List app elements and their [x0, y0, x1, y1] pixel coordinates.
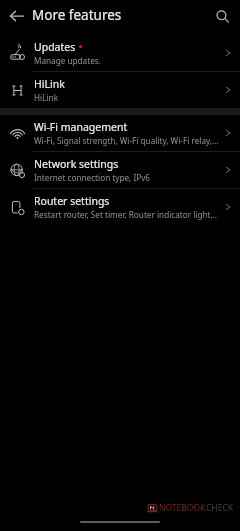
staticText: Manage updates.: [34, 55, 101, 66]
staticText: Router settings: [34, 194, 110, 208]
staticText: Wi-Fi management: [34, 120, 128, 134]
button[interactable]: Back: [4, 3, 30, 29]
button[interactable]: Updates: [0, 35, 240, 71]
staticText: Updates: [34, 40, 76, 54]
staticText: Wi-Fi, Signal strength, Wi-Fi quality, W…: [34, 135, 219, 146]
button[interactable]: HiLink: [0, 72, 240, 108]
staticText: NOTEBOOK: [159, 502, 206, 514]
staticText: Internet connection type, IPv6: [34, 172, 150, 183]
staticText: Network settings: [34, 157, 119, 171]
button[interactable]: Search: [209, 3, 235, 29]
staticText: Restart router, Set timer, Router indica…: [34, 209, 219, 220]
staticText: More features: [32, 6, 122, 24]
staticText: CHECK: [206, 502, 234, 514]
staticText: HiLink: [34, 92, 59, 103]
button[interactable]: Router settings: [0, 189, 240, 225]
button[interactable]: Wi-Fi management: [0, 115, 240, 151]
button[interactable]: Network settings: [0, 152, 240, 188]
staticText: HiLink: [34, 77, 65, 91]
